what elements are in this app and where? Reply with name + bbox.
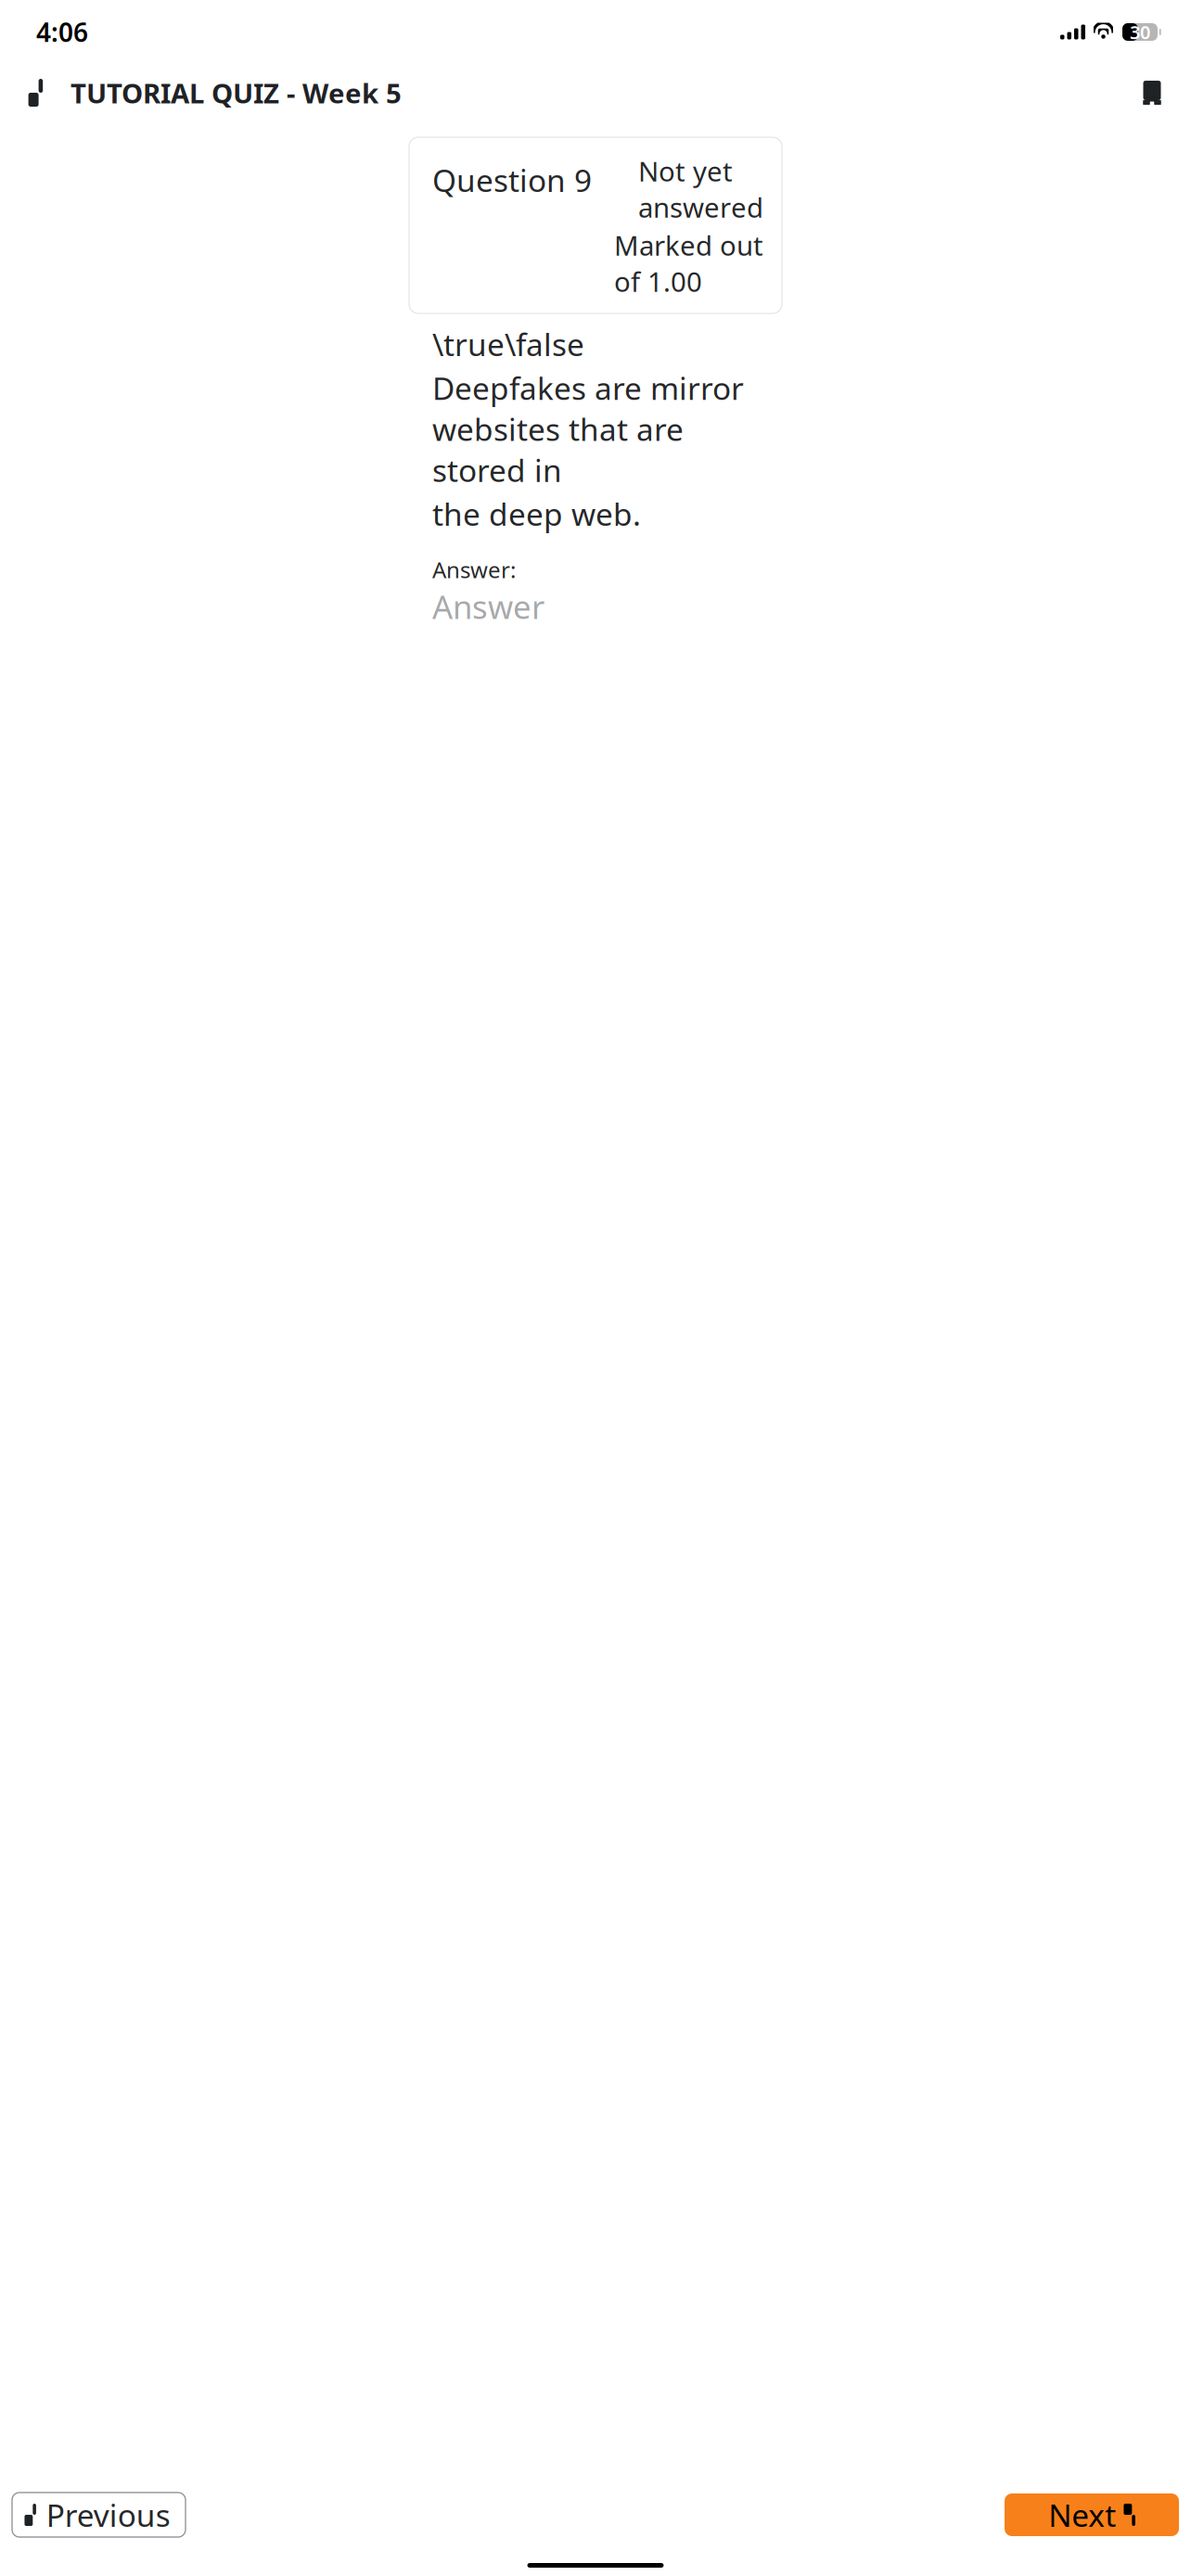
- button[interactable]: Back: [11, 67, 63, 119]
- button[interactable]: Previous: [12, 2493, 186, 2537]
- staticText: Marked out of 1.00: [614, 227, 763, 299]
- staticText: \true\false: [432, 323, 584, 365]
- staticText: Answer:: [432, 555, 516, 584]
- button[interactable]: Bookmark: [1126, 67, 1178, 119]
- staticText: Next: [1048, 2494, 1116, 2535]
- staticText: Not yet answered: [638, 153, 763, 225]
- staticText: Answer: [432, 585, 544, 628]
- staticText: 30: [1130, 20, 1150, 44]
- button[interactable]: Next: [1005, 2493, 1179, 2536]
- staticText: Deepfakes are mirror websites that are s…: [432, 367, 744, 490]
- button[interactable]: Answer: [432, 588, 763, 625]
- staticText: Previous: [46, 2494, 170, 2535]
- staticText: TUTORIAL QUIZ - Week 5: [70, 75, 402, 111]
- staticText: 4:06: [36, 15, 88, 49]
- staticText: the deep web.: [432, 493, 641, 534]
- staticText: Question 9: [432, 159, 592, 201]
